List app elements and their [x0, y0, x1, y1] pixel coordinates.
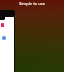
staticText: Simple to use	[19, 1, 46, 6]
